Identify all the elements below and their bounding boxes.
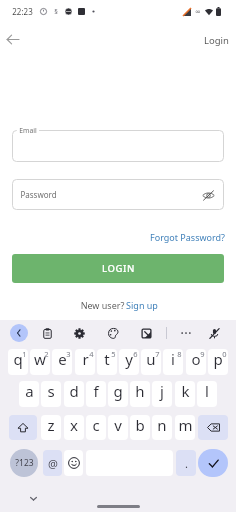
button[interactable] — [12, 179, 224, 210]
button[interactable]: Emoji — [64, 450, 83, 476]
button[interactable]: Show password — [199, 186, 217, 204]
button[interactable]: h — [130, 381, 150, 407]
button[interactable]: k — [175, 381, 195, 407]
staticText: u — [146, 349, 156, 369]
button[interactable]: q — [8, 349, 28, 375]
button[interactable]: y — [119, 349, 139, 375]
staticText: g — [113, 381, 123, 401]
button[interactable]: i — [163, 349, 183, 375]
button[interactable]: v — [108, 415, 128, 440]
staticText: s — [47, 381, 55, 401]
staticText: . — [185, 456, 188, 471]
staticText: Email — [19, 126, 37, 135]
staticText: z — [47, 415, 55, 435]
staticText: j — [160, 381, 164, 401]
staticText: k — [181, 381, 190, 401]
staticText: LOGIN — [102, 262, 135, 275]
button[interactable] — [12, 130, 224, 162]
staticText: 4 — [89, 349, 94, 359]
button[interactable]: Theme — [104, 324, 122, 342]
button[interactable]: Login — [198, 29, 235, 50]
staticText: i — [171, 349, 175, 369]
staticText: x — [70, 415, 78, 435]
button[interactable]: b — [130, 415, 150, 440]
staticText: m — [178, 415, 193, 435]
staticText: a — [25, 381, 34, 401]
button[interactable]: Symbols — [10, 449, 38, 477]
button[interactable]: m — [175, 415, 195, 440]
button[interactable]: Voice input off — [205, 324, 223, 342]
staticText: 9 — [200, 349, 205, 359]
button[interactable]: Enter — [198, 449, 228, 477]
staticText: o — [191, 349, 201, 369]
button[interactable]: w — [30, 349, 50, 375]
button[interactable]: At sign — [43, 450, 62, 476]
staticText: r — [82, 349, 89, 369]
staticText: 2 — [44, 349, 49, 359]
staticText: e — [58, 349, 67, 369]
button[interactable]: Forgot Password? — [144, 228, 236, 246]
button[interactable]: z — [41, 415, 61, 440]
staticText: 0 — [222, 349, 227, 359]
button[interactable]: More options — [177, 324, 195, 342]
staticText: Login — [204, 34, 229, 47]
staticText: b — [135, 415, 145, 435]
staticText: @ — [48, 456, 58, 471]
button[interactable]: x — [64, 415, 84, 440]
button[interactable]: Period — [176, 450, 196, 476]
staticText: 7 — [155, 349, 160, 359]
button[interactable]: Hide keyboard — [25, 490, 41, 506]
staticText: c — [92, 415, 100, 435]
button[interactable]: Back — [0, 27, 24, 51]
staticText: New user? — [79, 299, 126, 311]
staticText: d — [69, 381, 79, 401]
button[interactable]: r — [75, 349, 95, 375]
staticText: w — [34, 349, 46, 369]
staticText: Forgot Password? — [150, 231, 225, 243]
staticText: 5 — [111, 349, 116, 359]
staticText: f — [93, 381, 99, 401]
button[interactable]: Settings — [70, 324, 88, 342]
staticText: ∞ — [195, 8, 201, 16]
staticText: 1 — [22, 349, 27, 359]
staticText: ?123 — [15, 457, 34, 469]
button[interactable]: d — [64, 381, 84, 407]
button[interactable]: o — [186, 349, 206, 375]
button[interactable]: f — [86, 381, 106, 407]
button[interactable]: Backspace — [198, 415, 228, 440]
button[interactable]: u — [141, 349, 161, 375]
staticText: h — [135, 381, 145, 401]
button[interactable]: Translate — [137, 324, 155, 342]
staticText: 22:23 — [12, 6, 33, 17]
staticText: l — [205, 381, 209, 401]
button[interactable]: e — [52, 349, 72, 375]
staticText: Password — [20, 189, 57, 200]
button[interactable]: t — [97, 349, 117, 375]
button[interactable]: a — [19, 381, 39, 407]
button[interactable]: c — [86, 415, 106, 440]
button[interactable]: s — [41, 381, 61, 407]
button[interactable]: LOGIN — [12, 254, 224, 283]
button[interactable]: Clipboard — [38, 324, 56, 342]
button[interactable]: n — [152, 415, 172, 440]
staticText: p — [213, 349, 223, 369]
button[interactable]: g — [108, 381, 128, 407]
staticText: q — [13, 349, 23, 369]
button[interactable]: p — [208, 349, 228, 375]
button[interactable]: Sign up — [126, 299, 158, 311]
staticText: Sign up — [126, 299, 158, 311]
staticText: n — [157, 415, 167, 435]
staticText: 8 — [177, 349, 182, 359]
staticText: 6 — [133, 349, 138, 359]
staticText: t — [104, 349, 110, 369]
staticText: y — [125, 349, 133, 369]
button[interactable]: Shift — [9, 415, 37, 440]
staticText: v — [114, 415, 122, 435]
button[interactable]: Back — [10, 324, 28, 342]
button[interactable]: j — [152, 381, 172, 407]
button[interactable]: l — [197, 381, 217, 407]
staticText: § — [54, 7, 58, 17]
staticText: 3 — [66, 349, 71, 359]
